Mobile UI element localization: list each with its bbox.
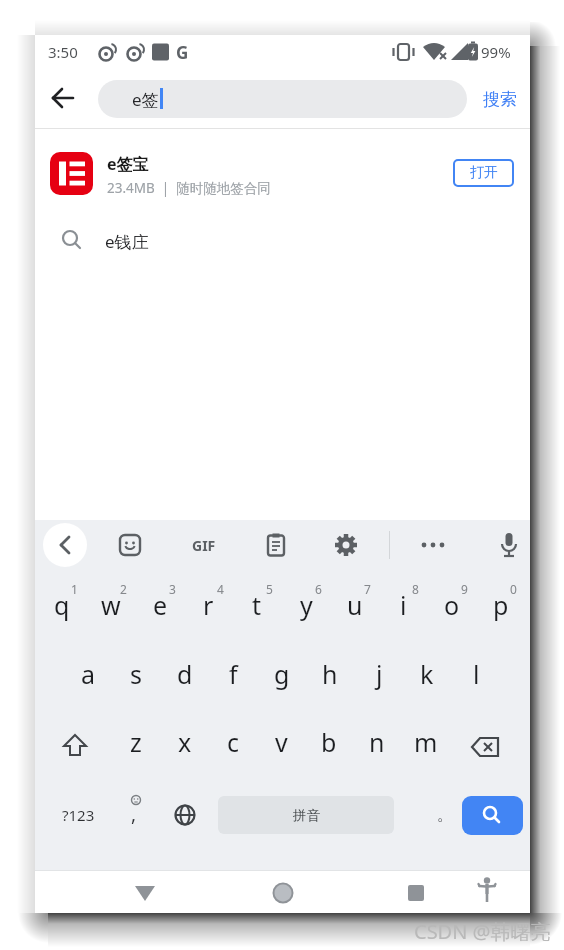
staticText: n bbox=[369, 725, 385, 759]
staticText: t bbox=[252, 588, 262, 622]
button[interactable]: GIF bbox=[185, 532, 223, 558]
button[interactable] bbox=[263, 532, 289, 558]
button[interactable]: c bbox=[209, 720, 257, 764]
button[interactable] bbox=[49, 84, 77, 112]
staticText: l bbox=[473, 657, 480, 691]
button[interactable]: 搜索 bbox=[476, 85, 524, 113]
button[interactable] bbox=[495, 531, 523, 559]
button[interactable]: f bbox=[209, 652, 257, 696]
button[interactable]: 。 bbox=[425, 793, 465, 837]
staticText: z bbox=[130, 725, 142, 759]
staticText: CSDN @韩曙亮 bbox=[414, 918, 551, 945]
staticText: b bbox=[321, 725, 337, 759]
button[interactable] bbox=[53, 725, 97, 769]
button[interactable]: t bbox=[233, 583, 281, 627]
button[interactable]: p bbox=[477, 583, 525, 627]
staticText: d bbox=[177, 657, 193, 691]
staticText: 拼音 bbox=[293, 807, 320, 824]
button[interactable]: w bbox=[87, 583, 135, 627]
staticText: m bbox=[414, 725, 438, 759]
button[interactable]: q bbox=[38, 583, 86, 627]
button[interactable]: e bbox=[136, 583, 184, 627]
button[interactable]: , bbox=[115, 793, 155, 837]
staticText: 4 bbox=[217, 581, 224, 597]
button[interactable]: e签宝 bbox=[35, 135, 530, 215]
button[interactable]: i bbox=[379, 583, 427, 627]
button[interactable]: d bbox=[161, 652, 209, 696]
staticText: 23.4MB | 随时随地签合同 bbox=[107, 179, 271, 197]
button[interactable]: s bbox=[112, 652, 160, 696]
button[interactable]: r bbox=[184, 583, 232, 627]
staticText: e签 bbox=[132, 88, 159, 111]
button[interactable] bbox=[130, 876, 160, 906]
button[interactable]: u bbox=[331, 583, 379, 627]
button[interactable]: h bbox=[306, 652, 354, 696]
staticText: e bbox=[153, 588, 168, 622]
staticText: a bbox=[81, 657, 96, 691]
button[interactable]: v bbox=[257, 720, 305, 764]
button[interactable]: n bbox=[353, 720, 401, 764]
staticText: 1 bbox=[71, 581, 78, 597]
button[interactable] bbox=[117, 532, 143, 558]
button[interactable]: m bbox=[402, 720, 450, 764]
staticText: j bbox=[376, 657, 383, 691]
staticText: 打开 bbox=[470, 164, 498, 182]
staticText: o bbox=[444, 588, 460, 622]
staticText: 99% bbox=[481, 42, 511, 62]
staticText: ?123 bbox=[62, 805, 95, 825]
button[interactable]: a bbox=[64, 652, 112, 696]
staticText: q bbox=[54, 588, 70, 622]
staticText: 3 bbox=[169, 581, 176, 597]
button[interactable]: y bbox=[282, 583, 330, 627]
staticText: y bbox=[300, 588, 313, 622]
button[interactable]: 打开 bbox=[453, 159, 514, 187]
button[interactable]: x bbox=[161, 720, 209, 764]
staticText: c bbox=[227, 725, 240, 759]
staticText: , bbox=[131, 801, 137, 827]
staticText: 5 bbox=[266, 581, 273, 597]
button[interactable]: g bbox=[258, 652, 306, 696]
staticText: i bbox=[400, 588, 407, 622]
button[interactable] bbox=[333, 532, 359, 558]
button[interactable] bbox=[43, 523, 87, 567]
button[interactable]: e签 bbox=[98, 80, 467, 118]
button[interactable]: z bbox=[112, 720, 160, 764]
button[interactable]: k bbox=[403, 652, 451, 696]
staticText: e钱庄 bbox=[105, 230, 149, 253]
staticText: 6 bbox=[315, 581, 322, 597]
button[interactable]: ?123 bbox=[53, 793, 103, 837]
button[interactable] bbox=[163, 793, 207, 837]
staticText: GIF bbox=[192, 536, 216, 555]
staticText: u bbox=[347, 588, 363, 622]
staticText: 7 bbox=[364, 581, 371, 597]
button[interactable] bbox=[464, 725, 508, 769]
button[interactable]: e钱庄 bbox=[35, 219, 530, 261]
staticText: G bbox=[176, 41, 189, 64]
button[interactable]: l bbox=[452, 652, 500, 696]
staticText: x bbox=[178, 725, 192, 759]
staticText: 8 bbox=[412, 581, 419, 597]
staticText: 搜索 bbox=[483, 89, 517, 110]
button[interactable] bbox=[462, 796, 523, 835]
staticText: s bbox=[130, 657, 142, 691]
button[interactable]: o bbox=[428, 583, 476, 627]
staticText: g bbox=[274, 657, 290, 691]
staticText: p bbox=[493, 588, 509, 622]
button[interactable]: b bbox=[305, 720, 353, 764]
staticText: h bbox=[322, 657, 338, 691]
button[interactable] bbox=[268, 876, 298, 906]
staticText: 3:50 bbox=[48, 42, 78, 62]
button[interactable]: j bbox=[355, 652, 403, 696]
staticText: k bbox=[420, 657, 434, 691]
staticText: w bbox=[101, 588, 121, 622]
staticText: 0 bbox=[510, 581, 517, 597]
button[interactable] bbox=[401, 876, 431, 906]
staticText: 。 bbox=[437, 805, 453, 825]
button[interactable] bbox=[472, 874, 502, 908]
staticText: 2 bbox=[120, 581, 127, 597]
staticText: f bbox=[229, 657, 238, 691]
staticText: 9 bbox=[461, 581, 468, 597]
staticText: r bbox=[203, 588, 214, 622]
staticText: v bbox=[275, 725, 288, 759]
button[interactable]: 拼音 bbox=[218, 796, 394, 834]
